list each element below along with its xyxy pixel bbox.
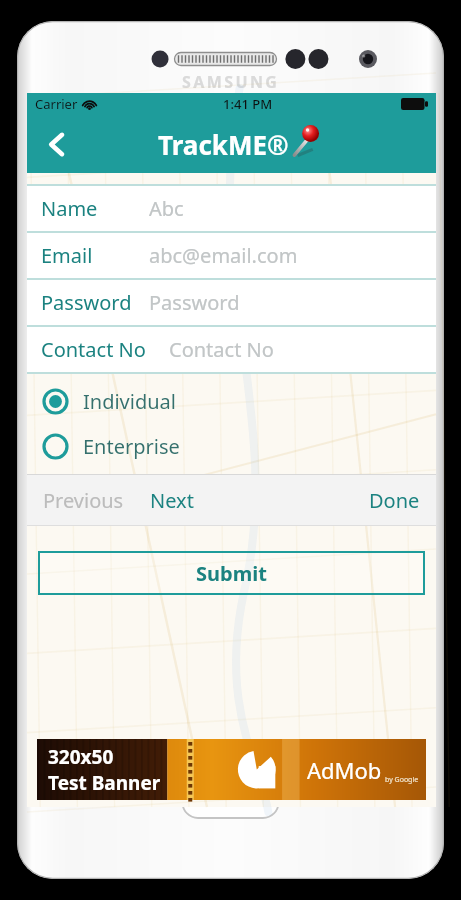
button[interactable]: Name [27, 186, 436, 231]
staticText: Enterprise [83, 433, 180, 460]
button[interactable]: Previous [39, 483, 128, 518]
staticText: AdMob [307, 755, 382, 785]
staticText: Name [41, 195, 98, 222]
staticText: Test Banner [48, 770, 161, 796]
staticText: by Google [385, 775, 419, 785]
button[interactable]: Email [27, 233, 436, 278]
staticText: Password [149, 289, 240, 316]
staticText: TrackME® [158, 127, 289, 162]
staticText: Contact No [169, 336, 274, 363]
button[interactable]: AdMob advertisement [37, 739, 426, 800]
button[interactable]: Next [146, 483, 198, 518]
staticText: Contact No [41, 336, 146, 363]
staticText: Done [369, 487, 420, 514]
button[interactable]: Enterprise [39, 430, 183, 463]
staticText: Next [150, 487, 194, 514]
staticText: Submit [196, 560, 267, 587]
staticText: Email [41, 242, 93, 269]
staticText: Password [41, 289, 132, 316]
staticText: Abc [149, 195, 184, 222]
button[interactable]: Contact No [27, 327, 436, 372]
button[interactable]: Submit [38, 551, 425, 595]
staticText: Previous [43, 487, 124, 514]
staticText: abc@email.com [149, 242, 298, 269]
staticText: 1:41 PM [223, 95, 273, 113]
button[interactable]: Back [32, 120, 80, 168]
button[interactable]: Individual [39, 385, 179, 418]
staticText: Individual [83, 388, 176, 415]
button[interactable]: Password [27, 280, 436, 325]
staticText: 320x50 [48, 744, 114, 770]
staticText: Carrier [35, 95, 78, 113]
staticText: SAMSUNG [182, 71, 280, 93]
button[interactable]: Done [365, 483, 424, 518]
